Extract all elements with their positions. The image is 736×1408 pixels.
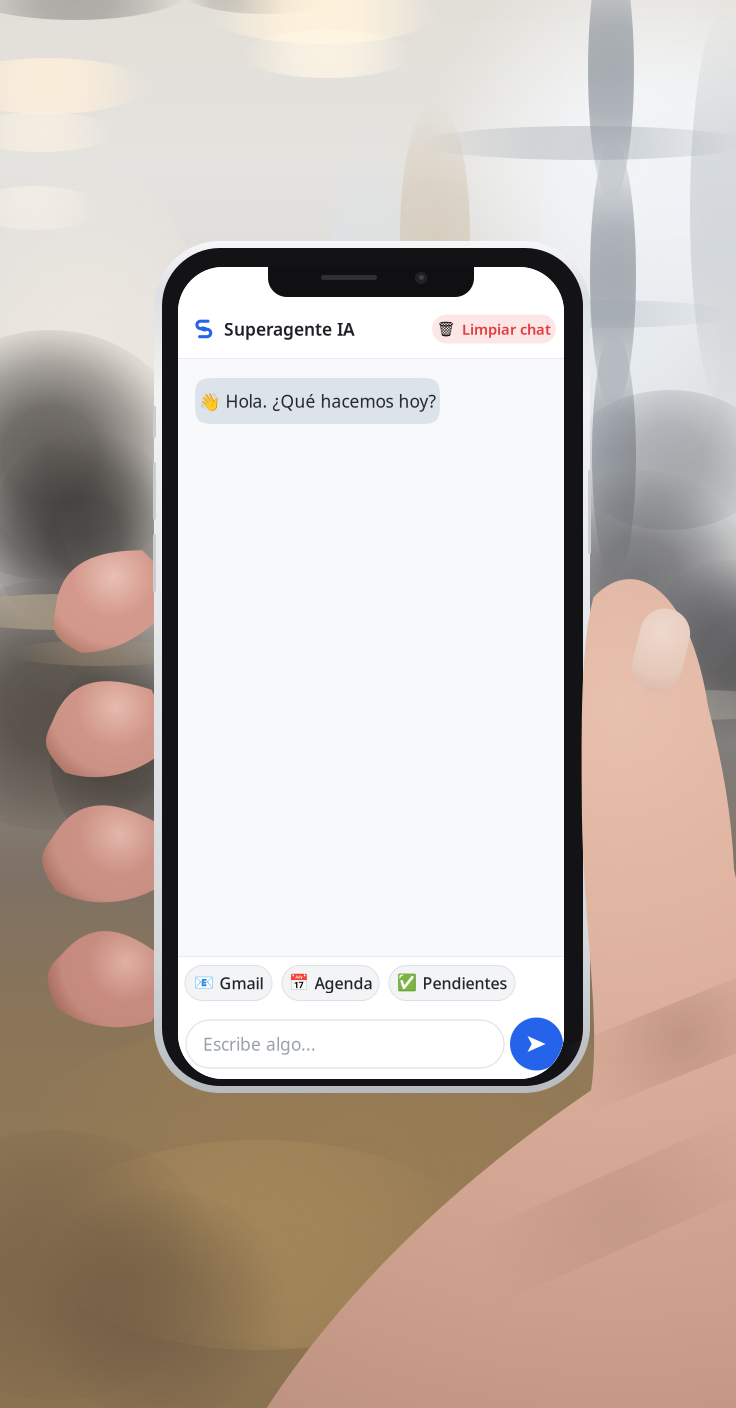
staticText: 👋 Hola. ¿Qué hacemos hoy?	[198, 389, 436, 412]
staticText: ✅	[396, 974, 416, 992]
button[interactable]: 🗑	[432, 314, 556, 343]
button[interactable]: 📧	[185, 965, 272, 1000]
staticText: Escribe algo...	[203, 1032, 316, 1055]
button[interactable]: ✅	[389, 965, 515, 1000]
staticText: 🗑	[437, 321, 456, 337]
staticText: Agenda	[314, 972, 372, 994]
button[interactable]: Superagente IA	[193, 317, 355, 340]
staticText: Superagente IA	[224, 317, 355, 340]
staticText: Limpiar chat	[462, 319, 551, 339]
button[interactable]: 📅	[282, 965, 379, 1000]
button[interactable]: Escribe algo...	[186, 1020, 504, 1068]
staticText: Pendientes	[422, 972, 507, 994]
staticText: 📧	[193, 974, 213, 992]
button[interactable]: Enviar	[510, 1017, 563, 1070]
staticText: 📅	[288, 974, 308, 992]
staticText: Gmail	[219, 972, 263, 994]
